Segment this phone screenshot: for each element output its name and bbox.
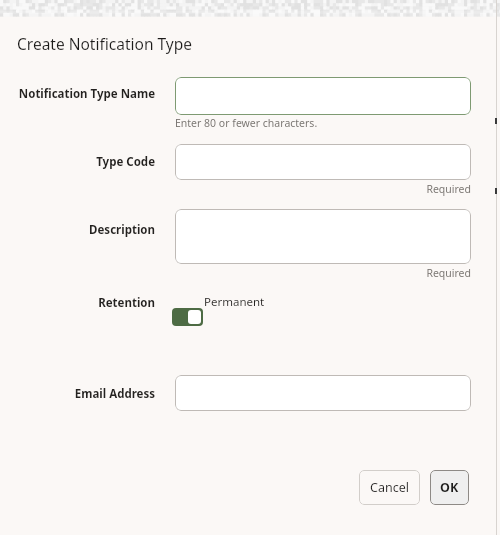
- staticText: Description: [0, 222, 155, 238]
- button[interactable]: Cancel: [359, 470, 420, 505]
- staticText: Permanent: [204, 294, 265, 310]
- staticText: OK: [440, 479, 459, 496]
- staticText: Notification Type Name: [0, 86, 155, 102]
- button[interactable]: Retention permanent toggle, on: [172, 308, 203, 326]
- button[interactable]: OK: [430, 470, 469, 505]
- button[interactable]: Text input field: [175, 77, 471, 115]
- button[interactable]: Text input field: [175, 144, 471, 180]
- staticText: Enter 80 or fewer characters.: [175, 116, 318, 130]
- staticText: Email Address: [0, 386, 155, 402]
- staticText: Retention: [0, 295, 155, 311]
- staticText: Required: [0, 182, 471, 196]
- button[interactable]: Text input field: [175, 375, 471, 411]
- staticText: Create Notification Type: [17, 33, 192, 54]
- button[interactable]: Text input field: [175, 209, 471, 264]
- staticText: Required: [0, 266, 471, 280]
- staticText: Type Code: [0, 154, 155, 170]
- staticText: Cancel: [370, 479, 409, 496]
